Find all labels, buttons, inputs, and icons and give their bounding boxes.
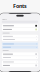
button[interactable]: Font option with preview [2,28,38,31]
button[interactable]: Font option [2,35,38,38]
button[interactable]: Font option with preview [2,64,38,67]
button[interactable]: Selected font [2,42,38,45]
button[interactable]: Font option [2,38,38,41]
button[interactable]: Font option with preview [2,24,38,27]
staticText: Fonts [2,18,7,20]
button[interactable]: Font option [2,60,38,63]
button[interactable]: Selected font [2,46,38,49]
button[interactable]: Font option with preview [2,52,38,56]
button[interactable]: Font option [2,56,38,59]
staticText: Fonts [13,2,27,10]
